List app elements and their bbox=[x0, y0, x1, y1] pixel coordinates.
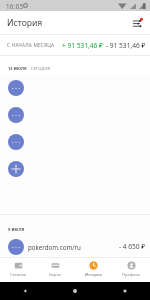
staticText: Профиль bbox=[122, 272, 141, 278]
button[interactable]: Recents bbox=[122, 288, 128, 294]
staticText: + 91 531,46 ₽ bbox=[62, 41, 103, 50]
button[interactable]: Back bbox=[22, 288, 28, 294]
staticText: pokerdom.com/ru bbox=[28, 243, 81, 251]
staticText: Главная bbox=[10, 272, 27, 278]
button[interactable]: Карты bbox=[37, 258, 74, 282]
button[interactable] bbox=[0, 74, 150, 101]
staticText: С НАЧАЛА МЕСЯЦА bbox=[7, 42, 55, 49]
staticText: - 4 650 ₽ bbox=[119, 242, 146, 251]
button[interactable]: История bbox=[74, 258, 112, 282]
button[interactable] bbox=[0, 101, 150, 128]
button[interactable]: Home bbox=[72, 288, 78, 294]
staticText: История bbox=[85, 272, 102, 278]
button[interactable]: 12 ИЮЛЯ bbox=[8, 66, 27, 71]
button[interactable]: pokerdom.com/ru bbox=[0, 236, 150, 257]
button[interactable]: Главная bbox=[0, 258, 37, 282]
button[interactable] bbox=[0, 155, 150, 182]
staticText: Карты bbox=[49, 272, 62, 278]
button[interactable]: СЕГОДНЯ bbox=[31, 66, 51, 72]
staticText: История bbox=[7, 17, 43, 29]
button[interactable]: Filter bbox=[129, 15, 145, 31]
button[interactable]: Профиль bbox=[112, 258, 150, 282]
staticText: 9 ИЮЛЯ bbox=[8, 227, 25, 232]
staticText: - 91 531,46 ₽ bbox=[106, 41, 146, 50]
staticText: 16:05 bbox=[6, 2, 24, 10]
button[interactable] bbox=[0, 128, 150, 155]
